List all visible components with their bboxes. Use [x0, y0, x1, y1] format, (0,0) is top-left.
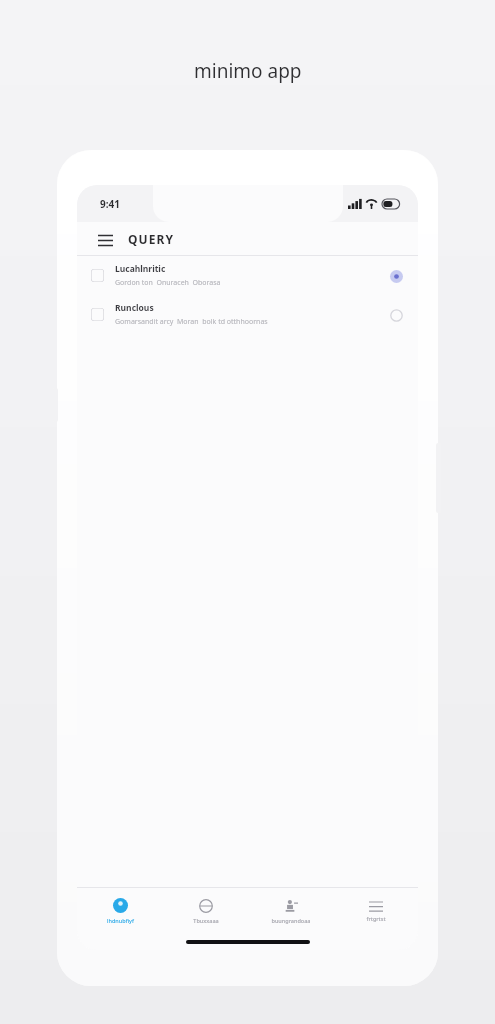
- staticText: Gordon ton Onuraceh Oborasa: [115, 278, 221, 288]
- button[interactable]: Select item: [91, 269, 104, 282]
- staticText: Lucahlnritic: [115, 263, 166, 275]
- staticText: Tbuxxaaa: [193, 917, 219, 924]
- staticText: lhdnubfiyf: [107, 917, 134, 924]
- button[interactable]: Not selected: [388, 307, 404, 323]
- staticText: buungrandoaa: [271, 917, 311, 924]
- staticText: frtgrtst: [366, 915, 386, 922]
- staticText: minimo app: [194, 58, 302, 84]
- button[interactable]: Select item: [91, 308, 104, 321]
- button[interactable]: Select item: [77, 256, 418, 295]
- button[interactable]: Tbuxxaaa: [163, 888, 248, 934]
- button[interactable]: Selected: [388, 268, 404, 284]
- button[interactable]: lhdnubfiyf: [77, 888, 163, 934]
- staticText: Gomarsandit arcy Moran bolk td otthhoorn…: [115, 317, 268, 327]
- button[interactable]: Open navigation menu: [94, 228, 116, 250]
- button[interactable]: Select item: [77, 295, 418, 334]
- button[interactable]: buungrandoaa: [248, 888, 333, 934]
- staticText: QUERY: [128, 231, 175, 247]
- staticText: Runclous: [115, 302, 154, 314]
- button[interactable]: frtgrtst: [333, 888, 418, 934]
- staticText: 9:41: [100, 197, 120, 211]
